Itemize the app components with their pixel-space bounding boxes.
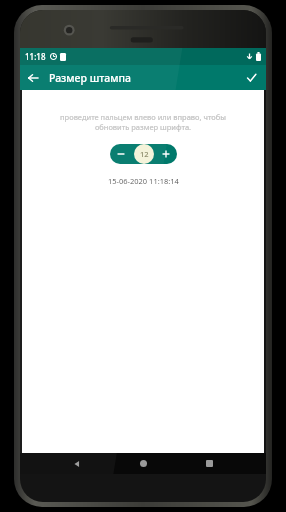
staticText: 12 [140,149,149,159]
button[interactable]: Home [133,453,154,474]
button[interactable]: Confirm [239,65,264,90]
button[interactable]: Back [66,453,87,474]
button[interactable]: Decrease [110,144,132,164]
staticText: проведите пальцем влево или вправо, чтоб… [30,112,256,132]
button[interactable]: 12 [134,144,154,164]
staticText: 11:18 [25,51,46,62]
button[interactable]: Recent apps [199,453,220,474]
staticText: 15-06-2020 11:18:14 [108,176,179,186]
button[interactable]: Back [20,65,45,90]
staticText: Размер штампа [49,71,131,85]
button[interactable]: Increase [155,144,177,164]
